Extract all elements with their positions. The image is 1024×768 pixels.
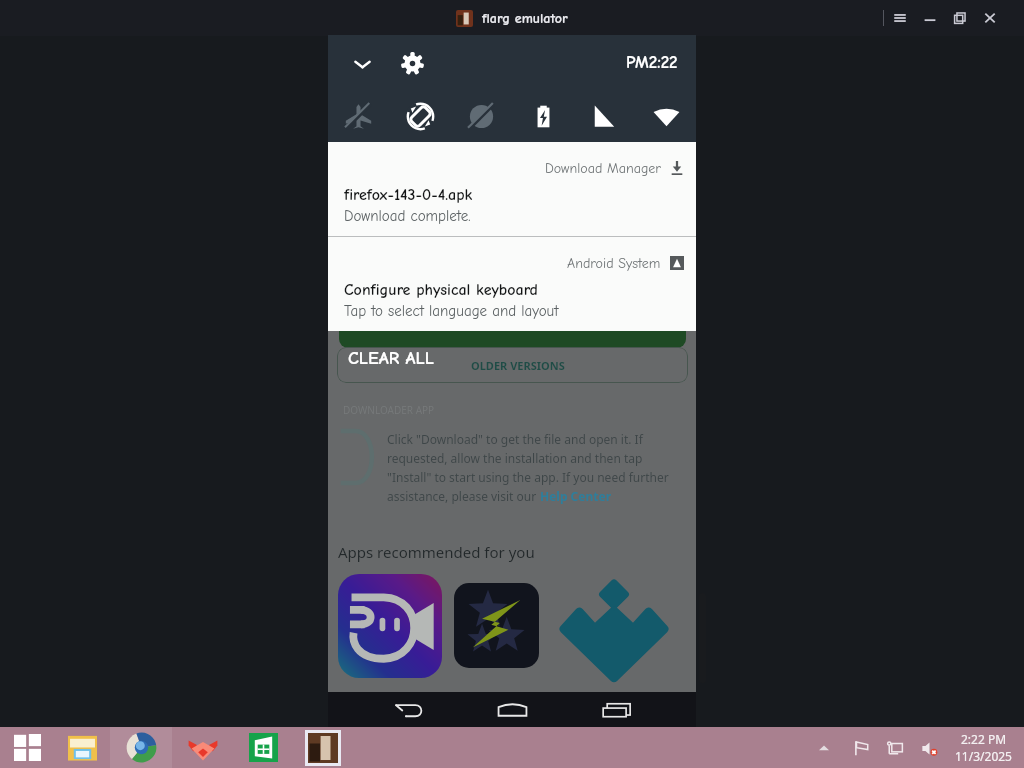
staticText: assistance, please visit our — [387, 488, 540, 504]
staticText: DOWNLOADER APP — [343, 403, 435, 417]
staticText: 2:22 PM — [961, 731, 1007, 747]
button[interactable]: Menu — [890, 8, 910, 28]
staticText: Android System — [567, 255, 661, 271]
button[interactable]: Back — [389, 692, 427, 727]
button[interactable]: Airplane mode — [336, 94, 380, 138]
staticText: flarg emulator — [482, 10, 568, 26]
staticText: Configure physical keyboard — [344, 281, 538, 299]
button[interactable]: Recent apps — [597, 692, 635, 727]
button[interactable]: Volume — [917, 736, 941, 760]
staticText: 11/3/2025 — [955, 748, 1012, 764]
staticText: Tap to select language and layout — [344, 302, 559, 319]
button[interactable]: Download Manager — [328, 142, 696, 236]
button[interactable]: Android System — [328, 237, 696, 331]
button[interactable]: Do not disturb — [459, 94, 503, 138]
button[interactable]: Store — [234, 727, 292, 768]
button[interactable]: Network — [883, 736, 907, 760]
button[interactable]: Home — [493, 692, 531, 727]
button[interactable]: File Explorer — [55, 727, 110, 768]
button[interactable]: VivaCut — [338, 574, 442, 678]
button[interactable]: CLEAR ALL — [337, 347, 688, 383]
button[interactable]: Collapse — [346, 47, 378, 79]
button[interactable]: Emulator window — [292, 727, 354, 768]
staticText: Download Manager — [545, 160, 661, 176]
staticText: "Install" to start using the app. If you… — [387, 469, 669, 485]
button[interactable]: Battery — [521, 94, 565, 138]
button[interactable]: Help Center — [540, 488, 612, 504]
button[interactable]: Restore — [950, 8, 970, 28]
button[interactable]: Minimize — [920, 8, 940, 28]
button[interactable]: Action center — [849, 736, 873, 760]
button[interactable]: Show hidden icons — [813, 737, 835, 759]
staticText: Click "Download" to get the file and ope… — [387, 431, 643, 447]
staticText: Download complete. — [344, 207, 471, 224]
button[interactable]: Chrome — [110, 727, 172, 768]
button[interactable]: Start — [0, 727, 55, 768]
button[interactable]: Firefox — [172, 727, 234, 768]
staticText: Apps recommended for you — [338, 542, 535, 562]
button[interactable]: Settings — [396, 47, 428, 79]
button[interactable]: OLDER VERSIONS — [471, 358, 565, 373]
staticText: requested, allow the installation and th… — [387, 450, 643, 466]
button[interactable] — [339, 331, 686, 348]
button[interactable]: Signal — [582, 94, 626, 138]
staticText: firefox-143-0-4.apk — [344, 186, 473, 204]
staticText: PM2:22 — [626, 53, 678, 73]
button[interactable]: Close — [980, 8, 1000, 28]
staticText: CLEAR ALL — [348, 348, 434, 369]
button[interactable]: 2:22 PM — [955, 731, 1012, 764]
button[interactable]: Downloader — [559, 574, 669, 684]
button[interactable]: Wi-Fi — [644, 94, 688, 138]
button[interactable]: Auto rotate — [398, 94, 442, 138]
button[interactable]: App — [454, 583, 539, 668]
